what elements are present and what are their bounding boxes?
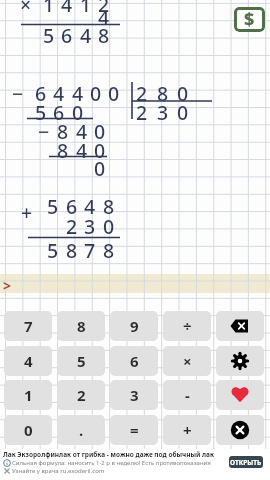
staticText: ОТКРЫТЬ [230, 458, 262, 467]
staticText: 0 [94, 118, 106, 142]
staticText: 0 [94, 155, 106, 179]
button[interactable]: = [110, 415, 158, 445]
staticText: 5 [47, 237, 59, 261]
staticText: 4 [76, 137, 88, 161]
staticText: 1 [80, 0, 92, 15]
staticText: 5 [47, 193, 59, 217]
staticText: 0 [72, 99, 84, 123]
staticText: 8 [103, 193, 115, 217]
button[interactable]: 8 [57, 311, 105, 341]
staticText: 6 [35, 80, 47, 104]
button[interactable]: $ [234, 7, 265, 32]
staticText: 8 [98, 22, 110, 46]
staticText: 1 [43, 0, 55, 15]
staticText: $ [244, 7, 255, 32]
button[interactable]: × [163, 346, 211, 376]
staticText: 4 [80, 22, 92, 46]
staticText: 4 [72, 80, 84, 104]
staticText: 5 [77, 351, 86, 371]
staticText: 8 [66, 237, 78, 261]
staticText: 6 [61, 22, 73, 46]
staticText: 4 [61, 0, 73, 15]
staticText: 7 [84, 237, 96, 261]
staticText: 0 [177, 99, 189, 123]
staticText: 3 [157, 99, 169, 123]
staticText: ÷ [183, 316, 192, 336]
staticText: 0 [177, 80, 189, 104]
staticText: 8 [157, 80, 169, 104]
staticText: 0 [108, 80, 120, 104]
staticText: 6 [130, 351, 139, 371]
button[interactable]: Лак Экзоролфинлак от грибка - можно даже… [0, 449, 270, 480]
button[interactable] [216, 311, 264, 341]
staticText: − [38, 118, 50, 142]
staticText: 8 [57, 137, 69, 161]
staticText: 0 [90, 80, 102, 104]
button[interactable]: 1 [4, 380, 52, 410]
staticText: 2 [66, 213, 78, 237]
staticText: 4 [98, 4, 110, 28]
button[interactable]: 2 [57, 380, 105, 410]
button[interactable]: 6 [110, 346, 158, 376]
button[interactable]: 5 [57, 346, 105, 376]
staticText: 0 [94, 137, 106, 161]
staticText: 0 [103, 213, 115, 237]
staticText: - [185, 385, 190, 405]
button[interactable]: + [163, 415, 211, 445]
staticText: 0 [24, 420, 33, 440]
button[interactable]: . [57, 415, 105, 445]
staticText: 2 [77, 385, 86, 405]
button[interactable] [216, 346, 264, 376]
staticText: + [183, 420, 192, 440]
button[interactable]: 3 [110, 380, 158, 410]
button[interactable]: ÷ [163, 311, 211, 341]
staticText: Сильная формула: наносить 1-2 р в неделю… [12, 459, 211, 467]
staticText: 3 [84, 213, 96, 237]
staticText: 5 [43, 22, 55, 46]
staticText: Узнайте у врача ru.exoderil.com [12, 467, 105, 475]
staticText: × [20, 0, 32, 15]
button[interactable]: 7 [4, 311, 52, 341]
button[interactable]: ОТКРЫТЬ [229, 456, 263, 468]
staticText: × [183, 351, 192, 371]
button[interactable] [216, 415, 264, 445]
staticText: 3 [130, 385, 139, 405]
staticText: 5 [35, 99, 47, 123]
staticText: 2 [136, 99, 148, 123]
staticText: 4 [76, 118, 88, 142]
staticText: = [130, 420, 139, 440]
button[interactable]: 9 [110, 311, 158, 341]
staticText: . [79, 420, 84, 440]
staticText: > [3, 276, 12, 295]
staticText: Лак Экзоролфинлак от грибка - можно даже… [3, 450, 214, 459]
staticText: 2 [98, 0, 110, 15]
staticText: 1 [24, 385, 33, 405]
button[interactable] [216, 380, 264, 410]
staticText: 8 [103, 237, 115, 261]
button[interactable]: 4 [4, 346, 52, 376]
staticText: 4 [53, 80, 65, 104]
staticText: + [21, 199, 33, 223]
staticText: 2 [136, 80, 148, 104]
staticText: 9 [130, 316, 139, 336]
staticText: 8 [77, 316, 86, 336]
staticText: 6 [53, 99, 65, 123]
staticText: 8 [57, 118, 69, 142]
button[interactable]: 0 [4, 415, 52, 445]
staticText: 4 [84, 193, 96, 217]
staticText: 6 [66, 193, 78, 217]
staticText: 4 [24, 351, 33, 371]
staticText: 7 [24, 316, 33, 336]
button[interactable]: - [163, 380, 211, 410]
staticText: − [12, 80, 24, 104]
